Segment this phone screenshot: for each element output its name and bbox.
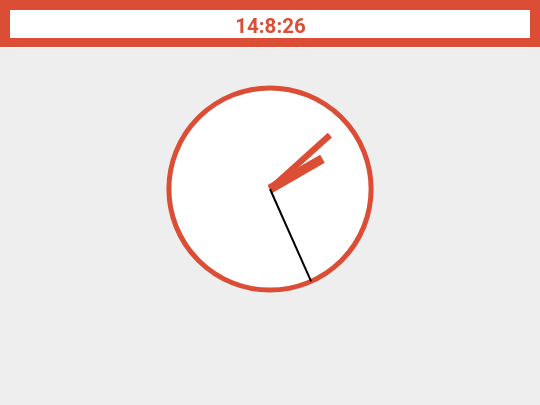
button[interactable]: Analog clock showing 14:8:26 [0, 48, 540, 405]
staticText: 14:8:26 [235, 14, 306, 38]
button[interactable]: 14:8:26 [10, 10, 530, 38]
